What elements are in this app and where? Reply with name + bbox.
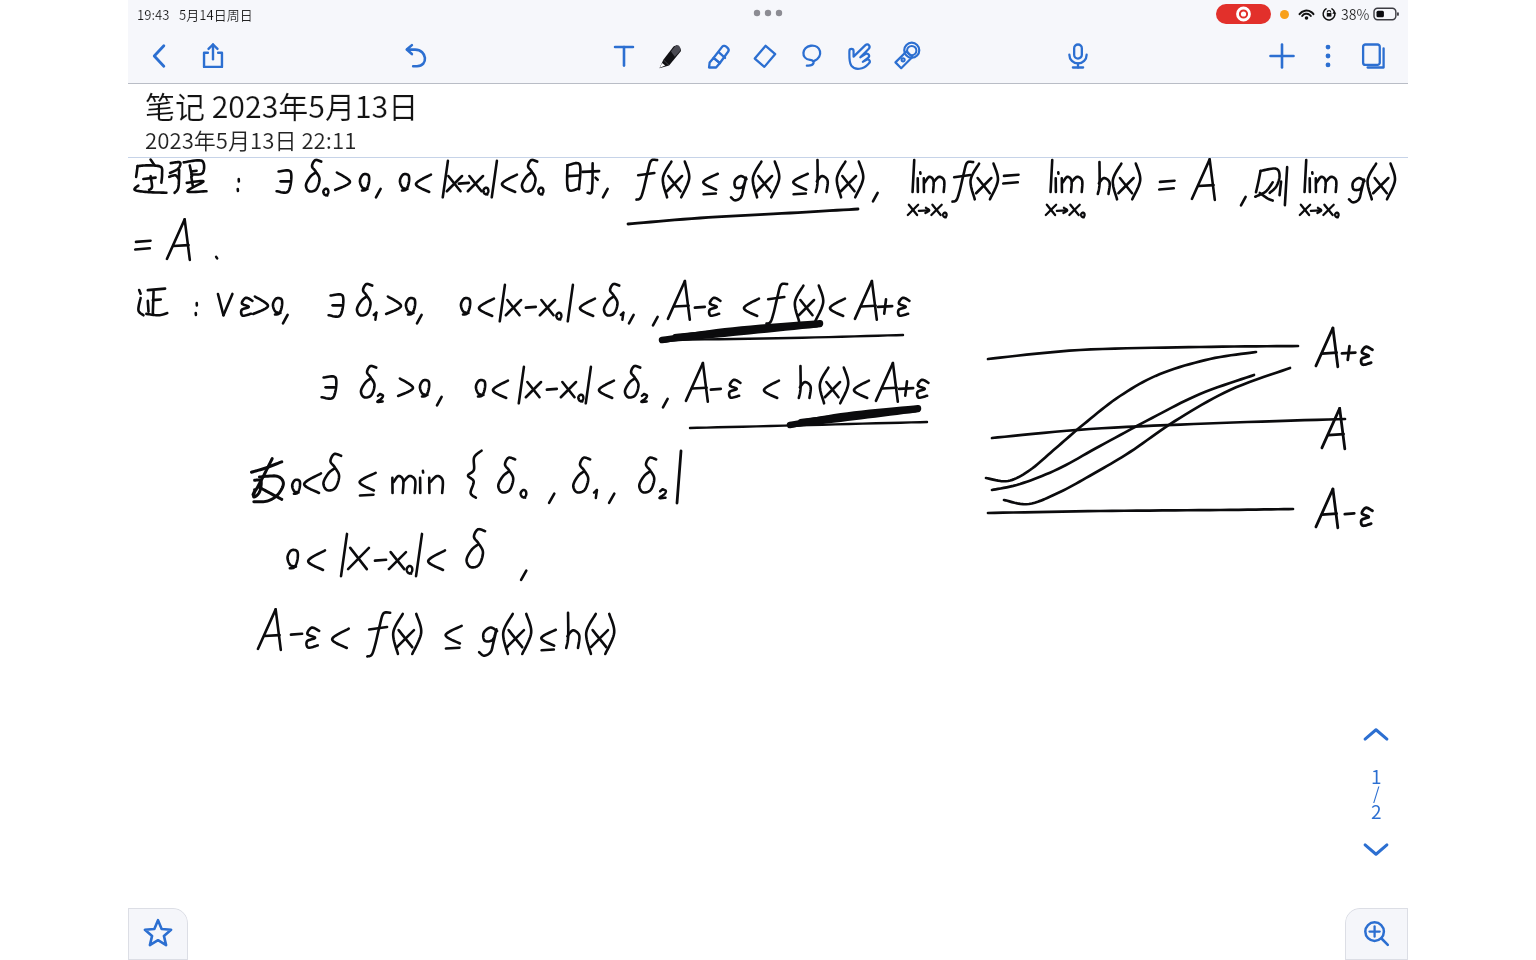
staticText: 2023年5月13日 22:11	[145, 123, 357, 155]
button[interactable]: Record audio	[1056, 34, 1100, 78]
button[interactable]: Text tool	[602, 34, 646, 78]
button[interactable]: Pages	[1352, 34, 1396, 78]
button[interactable]: Hand	[837, 34, 881, 78]
staticText: 19:43	[137, 5, 170, 24]
staticText: 2	[1371, 797, 1382, 825]
button[interactable]: Back	[138, 34, 182, 78]
button[interactable]: Favorite	[128, 908, 188, 960]
button[interactable]: More options	[1306, 34, 1350, 78]
staticText: 笔记 2023年5月13日	[145, 83, 419, 126]
button[interactable]: Add	[1260, 34, 1304, 78]
button[interactable]: Eraser	[743, 34, 787, 78]
button[interactable]: Lasso	[790, 34, 834, 78]
staticText: 1	[1371, 762, 1382, 790]
button[interactable]: Laser pointer	[884, 34, 928, 78]
staticText: 38%	[1341, 4, 1370, 24]
button[interactable]: Next page	[1359, 831, 1393, 865]
button[interactable]: Zoom in	[1345, 908, 1408, 960]
button[interactable]: Highlighter	[696, 34, 740, 78]
button[interactable]: Share	[191, 34, 235, 78]
staticText: 5月14日周日	[179, 5, 253, 24]
button[interactable]: Pen tool	[649, 34, 693, 78]
button[interactable]: Previous page	[1359, 719, 1393, 753]
button[interactable]: Undo	[395, 34, 439, 78]
staticText: /	[1373, 780, 1380, 805]
